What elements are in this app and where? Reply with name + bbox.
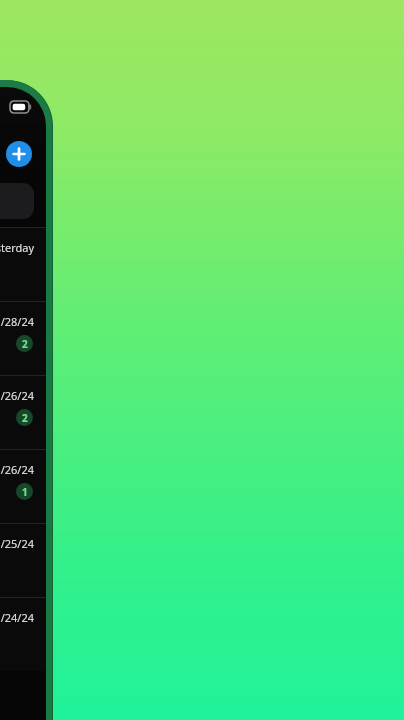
- staticText: 1: [22, 485, 28, 499]
- button[interactable]: Sara Oyelaran: [0, 523, 46, 597]
- staticText: 2: [22, 337, 28, 351]
- button[interactable]: Dev Team: [0, 301, 46, 375]
- staticText: 12/25/24: [0, 536, 34, 551]
- staticText: 2: [22, 411, 28, 425]
- staticText: 12/26/24: [0, 462, 34, 477]
- staticText: 12/24/24: [0, 610, 34, 625]
- button[interactable]: Anna Keller: [0, 227, 46, 301]
- button[interactable]: New message: [6, 141, 32, 167]
- staticText: 12/28/24: [0, 314, 34, 329]
- staticText: Yesterday: [0, 240, 34, 255]
- button[interactable]: Search: [0, 183, 34, 219]
- button[interactable]: Family: [0, 449, 46, 523]
- button[interactable]: Nico: [0, 597, 46, 671]
- staticText: 12/26/24: [0, 388, 34, 403]
- button[interactable]: Marcus Lin: [0, 375, 46, 449]
